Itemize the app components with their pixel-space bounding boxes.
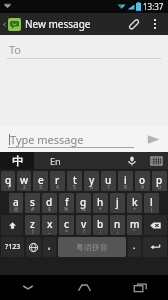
button[interactable]: e bbox=[33, 171, 48, 191]
button[interactable]: f bbox=[59, 193, 74, 213]
button[interactable]: 中 bbox=[0, 152, 34, 169]
staticText: * bbox=[99, 206, 102, 213]
button[interactable]: r bbox=[50, 171, 65, 191]
staticText: w bbox=[20, 173, 29, 187]
button[interactable]: t bbox=[67, 171, 82, 191]
staticText: - bbox=[117, 206, 119, 213]
staticText: o bbox=[139, 173, 146, 187]
staticText: ) bbox=[32, 228, 34, 235]
staticText: 1 bbox=[7, 184, 10, 191]
staticText: z bbox=[30, 217, 35, 231]
button[interactable]: x bbox=[42, 215, 57, 235]
staticText: ( bbox=[151, 206, 153, 213]
staticText: c bbox=[64, 217, 69, 231]
staticText: f bbox=[65, 195, 69, 209]
button[interactable]: Send bbox=[138, 126, 168, 152]
button[interactable]: Recent apps bbox=[112, 275, 168, 300]
button[interactable]: q bbox=[1, 171, 15, 191]
staticText: 9 bbox=[141, 184, 144, 191]
button[interactable]: , bbox=[43, 237, 56, 257]
staticText: . bbox=[133, 239, 136, 251]
button[interactable]: ?123 bbox=[1, 237, 24, 257]
staticText: k bbox=[132, 195, 138, 209]
staticText: r bbox=[55, 173, 60, 187]
button[interactable]: Keyboard settings bbox=[144, 152, 168, 169]
staticText: 7 bbox=[107, 184, 110, 191]
staticText: n bbox=[114, 217, 121, 231]
button[interactable]: Home bbox=[56, 275, 112, 300]
staticText: a bbox=[13, 195, 19, 209]
button[interactable]: Type message bbox=[0, 126, 138, 152]
button[interactable]: Voice input bbox=[120, 152, 144, 169]
button[interactable]: Enter bbox=[143, 237, 167, 257]
staticText: l bbox=[150, 195, 153, 209]
button[interactable]: j bbox=[110, 193, 125, 213]
button[interactable]: y bbox=[84, 171, 99, 191]
staticText: h bbox=[97, 195, 104, 209]
staticText: i bbox=[124, 173, 127, 187]
staticText: 8 bbox=[124, 184, 127, 191]
staticText: En bbox=[50, 155, 61, 167]
staticText: j bbox=[116, 195, 119, 209]
button[interactable]: s bbox=[25, 193, 40, 213]
staticText: t bbox=[73, 173, 77, 187]
staticText: % bbox=[64, 206, 69, 213]
staticText: v bbox=[81, 217, 87, 231]
staticText: 粤语拼音 bbox=[76, 242, 108, 252]
button[interactable]: Hide keyboard bbox=[0, 275, 56, 300]
staticText: y bbox=[89, 173, 95, 187]
staticText: ; bbox=[117, 228, 119, 235]
staticText: p bbox=[156, 173, 163, 187]
staticText: d bbox=[46, 195, 53, 209]
staticText: # bbox=[31, 206, 35, 213]
button[interactable]: To bbox=[0, 35, 168, 63]
staticText: , bbox=[48, 239, 51, 251]
button[interactable]: Change language bbox=[26, 237, 41, 257]
button[interactable]: v bbox=[76, 215, 91, 235]
button[interactable]: w bbox=[17, 171, 31, 191]
button[interactable]: Backspace bbox=[144, 215, 167, 235]
button[interactable]: c bbox=[59, 215, 74, 235]
staticText: 6 bbox=[90, 184, 93, 191]
button[interactable]: New message bbox=[0, 13, 95, 35]
staticText: 5 bbox=[73, 184, 76, 191]
button[interactable]: d bbox=[42, 193, 57, 213]
staticText: @ bbox=[14, 206, 19, 213]
staticText: 13:37 bbox=[143, 1, 164, 12]
staticText: _ bbox=[48, 228, 51, 235]
staticText: = bbox=[65, 228, 68, 235]
button[interactable]: o bbox=[135, 171, 150, 191]
staticText: e bbox=[38, 173, 44, 187]
staticText: & bbox=[82, 206, 86, 213]
staticText: m bbox=[130, 217, 140, 231]
staticText: ?123 bbox=[5, 242, 21, 252]
button[interactable]: a bbox=[9, 193, 23, 213]
staticText: 2 bbox=[23, 184, 26, 191]
button[interactable]: . bbox=[128, 237, 141, 257]
staticText: : bbox=[100, 228, 102, 235]
button[interactable]: b bbox=[93, 215, 108, 235]
button[interactable]: g bbox=[76, 193, 91, 213]
button[interactable]: z bbox=[25, 215, 40, 235]
staticText: / bbox=[83, 228, 85, 235]
button[interactable]: More options bbox=[144, 13, 166, 35]
button[interactable]: m bbox=[127, 215, 142, 235]
staticText: b bbox=[97, 217, 104, 231]
button[interactable]: k bbox=[127, 193, 142, 213]
staticText: s bbox=[30, 195, 35, 209]
staticText: q bbox=[5, 173, 12, 187]
staticText: 0 bbox=[158, 184, 161, 191]
button[interactable]: h bbox=[93, 193, 108, 213]
button[interactable]: u bbox=[101, 171, 116, 191]
button[interactable]: i bbox=[118, 171, 133, 191]
button[interactable]: 粤语拼音 bbox=[58, 237, 126, 257]
button[interactable]: Shift bbox=[1, 215, 23, 235]
button[interactable]: En bbox=[34, 152, 76, 169]
button[interactable]: l bbox=[144, 193, 159, 213]
button[interactable]: Attach bbox=[122, 13, 144, 35]
button[interactable]: p bbox=[152, 171, 167, 191]
button[interactable]: n bbox=[110, 215, 125, 235]
staticText: u bbox=[105, 173, 112, 187]
staticText: 4 bbox=[56, 184, 59, 191]
staticText: 中 bbox=[12, 154, 23, 168]
